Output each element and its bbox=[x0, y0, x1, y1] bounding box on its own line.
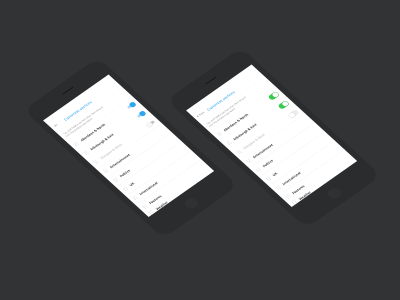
staticText: Features bbox=[148, 194, 163, 205]
button[interactable]: Weather bbox=[289, 158, 357, 207]
button[interactable]: Switch off bbox=[145, 119, 157, 128]
button[interactable]: Entertainment bbox=[240, 113, 315, 168]
staticText: Politics bbox=[119, 168, 131, 178]
button[interactable]: Switch off bbox=[287, 109, 300, 119]
staticText: UK bbox=[271, 171, 279, 177]
button[interactable]: Features bbox=[279, 149, 354, 204]
staticText: Tap and hold a section title, then drag … bbox=[62, 105, 106, 137]
staticText: Customise sections bbox=[63, 100, 93, 122]
staticText: Glasgow & West bbox=[99, 142, 123, 160]
staticText: Tap and hold a section title, then drag … bbox=[205, 95, 249, 127]
button[interactable]: Edinburgh & East bbox=[220, 96, 295, 150]
button[interactable]: UK bbox=[116, 141, 191, 196]
button[interactable]: Features bbox=[136, 159, 211, 214]
button[interactable]: Edinburgh & East bbox=[77, 106, 152, 160]
button[interactable]: Switch on bbox=[268, 91, 280, 101]
button[interactable]: Switch on bbox=[135, 110, 147, 119]
button[interactable]: Glasgow & West bbox=[230, 104, 305, 159]
button[interactable]: Back bbox=[192, 109, 207, 120]
staticText: Aberdeen & North bbox=[79, 122, 106, 142]
staticText: International bbox=[281, 171, 302, 186]
staticText: Entertainment bbox=[109, 153, 131, 169]
staticText: Customise sections bbox=[206, 90, 236, 112]
button[interactable]: Back bbox=[51, 121, 61, 129]
staticText: UK bbox=[128, 181, 136, 187]
button[interactable]: Aberdeen & North bbox=[67, 97, 142, 151]
button[interactable]: Aberdeen & North bbox=[210, 87, 285, 141]
button[interactable]: Weather bbox=[146, 168, 214, 217]
button[interactable]: Entertainment bbox=[97, 123, 172, 178]
staticText: Entertainment bbox=[252, 143, 274, 159]
button[interactable]: Glasgow & West bbox=[87, 114, 162, 169]
button[interactable]: Politics bbox=[106, 132, 182, 187]
staticText: Features bbox=[291, 184, 306, 195]
staticText: Politics bbox=[262, 158, 274, 168]
button[interactable]: International bbox=[126, 150, 201, 205]
staticText: Edinburgh & East bbox=[89, 132, 115, 151]
staticText: Edinburgh & East bbox=[232, 122, 258, 141]
staticText: Weather bbox=[298, 190, 312, 201]
staticText: International bbox=[138, 181, 159, 196]
button[interactable]: Politics bbox=[249, 122, 325, 177]
button[interactable]: UK bbox=[259, 131, 334, 186]
button[interactable]: International bbox=[269, 140, 344, 195]
staticText: Aberdeen & North bbox=[222, 112, 249, 132]
staticText: Weather bbox=[155, 200, 169, 211]
button[interactable]: Switch on bbox=[125, 101, 137, 110]
button[interactable]: Switch on bbox=[277, 100, 290, 110]
staticText: Back bbox=[198, 111, 205, 116]
staticText: Glasgow & West bbox=[242, 132, 266, 150]
